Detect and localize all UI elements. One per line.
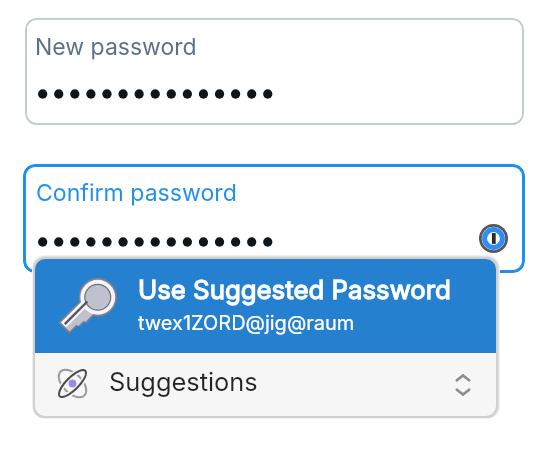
button[interactable]: Expand suggestions — [450, 365, 476, 405]
staticText: Use Suggested Password — [138, 274, 451, 305]
other: Suggestions — [58, 369, 87, 398]
button[interactable]: Confirm password — [23, 164, 525, 273]
staticText: twex1ZORD@jig@raum — [138, 311, 355, 335]
staticText: New password — [35, 33, 197, 61]
button[interactable]: Key — [35, 259, 496, 353]
staticText: Suggestions — [109, 366, 258, 397]
button[interactable]: 1Password — [479, 224, 508, 253]
button[interactable]: Suggestions — [35, 353, 496, 416]
staticText: Confirm password — [36, 179, 237, 207]
other: Key — [54, 276, 119, 341]
button[interactable]: New password — [25, 18, 524, 125]
